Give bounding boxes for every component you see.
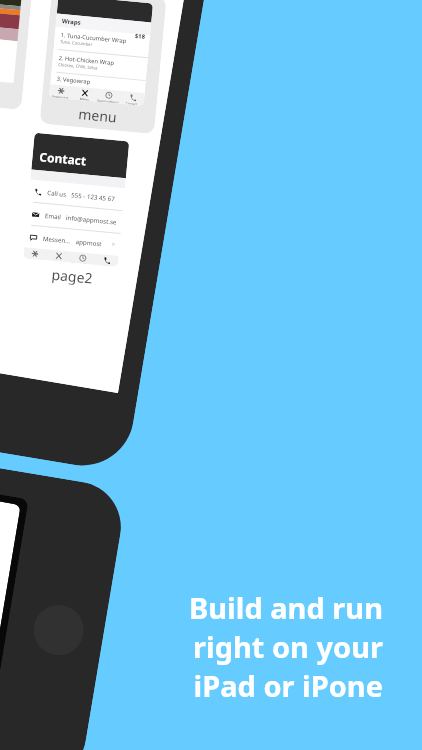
button[interactable]: Messen... bbox=[27, 219, 118, 262]
staticText: Contact bbox=[38, 145, 88, 172]
staticText: info@appmost.se bbox=[65, 209, 118, 229]
staticText: right on your bbox=[193, 627, 383, 666]
staticText: 555 - 123 45 67 bbox=[70, 187, 116, 205]
button[interactable]: OpeningHours bbox=[95, 87, 122, 105]
staticText: $18 bbox=[134, 31, 146, 41]
staticText: Build and run bbox=[188, 588, 383, 627]
button[interactable]: Menu bbox=[71, 85, 98, 103]
button[interactable]: Menu bbox=[45, 248, 72, 264]
staticText: 2. Hot-Chicken Wrap bbox=[58, 50, 115, 71]
staticText: Contact bbox=[100, 263, 112, 267]
button[interactable]: Call us bbox=[32, 174, 122, 216]
staticText: 3. Vegowrap bbox=[56, 72, 91, 88]
staticText: Messen... bbox=[42, 232, 72, 246]
staticText: Email bbox=[44, 210, 62, 222]
button[interactable]: 3. Vegowrap bbox=[55, 67, 142, 99]
button[interactable]: Restaurant bbox=[48, 83, 74, 101]
button[interactable]: 2. Hot-Chicken Wrap bbox=[56, 44, 145, 86]
staticText: Wraps bbox=[61, 16, 82, 28]
button[interactable]: Wraps bbox=[30, 0, 177, 142]
button[interactable]: 1. Tuna-Cucumber Wrap bbox=[58, 21, 147, 63]
button[interactable]: Restaurant bbox=[22, 245, 48, 262]
staticText: 1. Tuna-Cucumber Wrap bbox=[60, 26, 127, 50]
button[interactable]: Email bbox=[30, 197, 120, 239]
staticText: OpeningHours bbox=[96, 97, 120, 105]
staticText: appmost bbox=[75, 235, 103, 249]
staticText: Menu bbox=[54, 259, 63, 262]
button[interactable]: Contact bbox=[119, 89, 146, 108]
staticText: Restaurant bbox=[26, 256, 43, 261]
staticText: iPad or iPone bbox=[193, 666, 383, 705]
staticText: OpeningHours bbox=[71, 260, 94, 266]
staticText: Contact bbox=[125, 100, 138, 106]
button[interactable]: Contact bbox=[93, 252, 119, 269]
staticText: Restaurant bbox=[52, 93, 69, 100]
staticText: Tuna, Cucumber bbox=[59, 37, 94, 50]
staticText: menu bbox=[76, 101, 120, 129]
staticText: Chicken, Chilli, Salsa bbox=[57, 59, 99, 74]
button[interactable]: Contact bbox=[3, 117, 154, 298]
staticText: Call us bbox=[46, 187, 67, 199]
staticText: Menu bbox=[80, 96, 89, 102]
staticText: page2 bbox=[50, 262, 95, 289]
button[interactable]: OpeningHours bbox=[69, 250, 96, 266]
button[interactable] bbox=[0, 0, 43, 118]
staticText: > bbox=[111, 240, 117, 249]
